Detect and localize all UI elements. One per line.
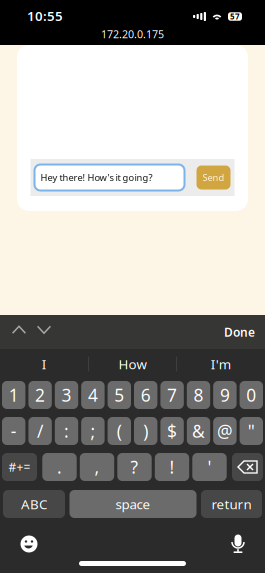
staticText: ( — [117, 419, 122, 442]
staticText: Done — [224, 324, 255, 340]
staticText: I — [42, 355, 47, 373]
staticText: ) — [143, 419, 148, 442]
staticText: @ — [217, 419, 233, 442]
button[interactable]: 2 — [28, 381, 52, 409]
staticText: return — [211, 495, 251, 513]
button[interactable]: 6 — [134, 381, 157, 409]
staticText: 5 — [114, 383, 124, 406]
staticText: 0 — [246, 383, 256, 406]
staticText: ! — [169, 455, 174, 478]
staticText: ' — [207, 455, 211, 478]
button[interactable]: " — [240, 417, 263, 445]
button[interactable]: 4 — [81, 381, 105, 409]
staticText: 6 — [141, 383, 151, 406]
button[interactable]: @ — [213, 417, 237, 445]
staticText: $ — [167, 419, 177, 442]
button[interactable]: & — [187, 417, 210, 445]
staticText: " — [248, 419, 255, 442]
staticText: - — [11, 419, 17, 442]
button[interactable]: 9 — [213, 381, 237, 409]
staticText: / — [37, 419, 43, 442]
staticText: ABC — [21, 495, 47, 513]
staticText: 2 — [35, 383, 45, 406]
button[interactable]: 0 — [240, 381, 263, 409]
button[interactable]: Previous field — [0, 315, 27, 349]
button[interactable]: . — [42, 453, 77, 481]
staticText: Hey there! How's it going? — [40, 171, 152, 184]
staticText: 9 — [220, 383, 230, 406]
staticText: 10:55 — [27, 7, 63, 25]
staticText: 8 — [193, 383, 203, 406]
staticText: Send — [202, 171, 224, 184]
staticText: & — [192, 419, 205, 442]
button[interactable]: Next field — [0, 315, 27, 349]
button[interactable]: How — [88, 349, 177, 379]
staticText: 4 — [88, 383, 98, 406]
button[interactable]: 7 — [160, 381, 184, 409]
button[interactable]: Dictation — [225, 528, 251, 560]
staticText: : — [64, 419, 69, 442]
button[interactable]: ! — [155, 453, 189, 481]
staticText: 1 — [9, 383, 19, 406]
button[interactable]: 1 — [2, 381, 25, 409]
button[interactable]: space — [69, 490, 196, 518]
button[interactable]: return — [201, 490, 262, 518]
button[interactable]: 5 — [108, 381, 131, 409]
button[interactable]: ; — [81, 417, 105, 445]
staticText: . — [57, 455, 62, 478]
staticText: I'm — [211, 355, 231, 373]
button[interactable]: ( — [108, 417, 131, 445]
button[interactable]: $ — [160, 417, 184, 445]
button[interactable]: , — [80, 453, 114, 481]
button[interactable]: ABC — [3, 490, 65, 518]
staticText: How — [118, 355, 146, 373]
button[interactable]: Emoji keyboard — [14, 529, 44, 559]
staticText: ? — [130, 455, 138, 478]
staticText: 172.20.0.175 — [101, 27, 164, 41]
button[interactable]: 8 — [187, 381, 210, 409]
button[interactable]: #+= — [2, 453, 37, 481]
button[interactable]: / — [28, 417, 52, 445]
staticText: , — [94, 455, 99, 478]
button[interactable]: Send — [196, 165, 230, 189]
button[interactable]: ' — [192, 453, 227, 481]
staticText: 7 — [167, 383, 177, 406]
button[interactable]: ? — [117, 453, 152, 481]
staticText: ; — [90, 419, 95, 442]
staticText: 57 — [230, 11, 240, 22]
button[interactable]: 3 — [55, 381, 78, 409]
button[interactable]: I — [0, 349, 88, 379]
staticText: 3 — [61, 383, 71, 406]
staticText: #+= — [8, 459, 30, 475]
button[interactable]: : — [55, 417, 78, 445]
button[interactable]: - — [2, 417, 25, 445]
button[interactable]: I'm — [177, 349, 265, 379]
button[interactable]: Done — [216, 314, 263, 350]
button[interactable]: ) — [134, 417, 157, 445]
button[interactable]: Delete — [232, 453, 263, 481]
staticText: space — [115, 495, 150, 513]
